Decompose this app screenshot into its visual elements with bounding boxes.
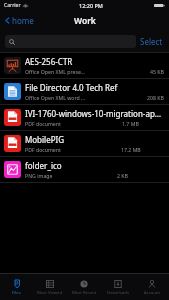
staticText: 2 KB xyxy=(117,172,128,179)
staticText: 12:20 PM xyxy=(79,2,103,9)
staticText: AES-256-CTR xyxy=(25,56,73,67)
button[interactable]: Most Recent xyxy=(67,274,101,300)
button[interactable] xyxy=(5,35,136,48)
staticText: MobilePIG xyxy=(25,134,65,145)
button[interactable]: Select xyxy=(136,34,164,49)
staticText: Office Open XML presentation xyxy=(25,68,87,75)
staticText: home xyxy=(12,15,34,26)
button[interactable]: Most Viewed xyxy=(33,274,67,300)
staticText: Work xyxy=(74,15,96,27)
staticText: 45 KB xyxy=(150,68,164,75)
button[interactable]: Account xyxy=(135,274,169,300)
staticText: File Director 4.0 Tech Ref xyxy=(25,82,118,93)
button[interactable]: home xyxy=(3,13,35,28)
staticText: Files xyxy=(12,290,21,296)
button[interactable]: AES-256-CTR xyxy=(0,53,169,79)
staticText: PDF document xyxy=(25,146,61,153)
staticText: PNG image xyxy=(25,172,53,179)
button[interactable]: IVI-1760-windows-10-migration-appsense xyxy=(0,105,169,131)
button[interactable]: MobilePIG xyxy=(0,131,169,157)
button[interactable]: File Director 4.0 Tech Ref xyxy=(0,79,169,105)
staticText: IVI-1760-windows-10-migration-appsense xyxy=(25,108,164,119)
staticText: Carrier xyxy=(4,2,21,9)
button[interactable]: Files xyxy=(0,274,33,300)
staticText: Account xyxy=(144,290,160,296)
staticText: 17.2 MB xyxy=(121,146,141,153)
staticText: Most Viewed xyxy=(37,290,63,296)
staticText: folder_ico xyxy=(25,160,62,171)
staticText: Select xyxy=(140,36,163,47)
button[interactable]: Downloads xyxy=(101,274,135,300)
staticText: Most Recent xyxy=(72,290,97,296)
staticText: 208 KB xyxy=(147,94,164,101)
staticText: Downloads xyxy=(107,290,129,296)
staticText: 1.7 MB xyxy=(122,120,139,127)
staticText: PDF document xyxy=(25,120,61,127)
button[interactable]: folder_ico xyxy=(0,157,169,183)
staticText: Office Open XML word processing document xyxy=(25,94,86,101)
